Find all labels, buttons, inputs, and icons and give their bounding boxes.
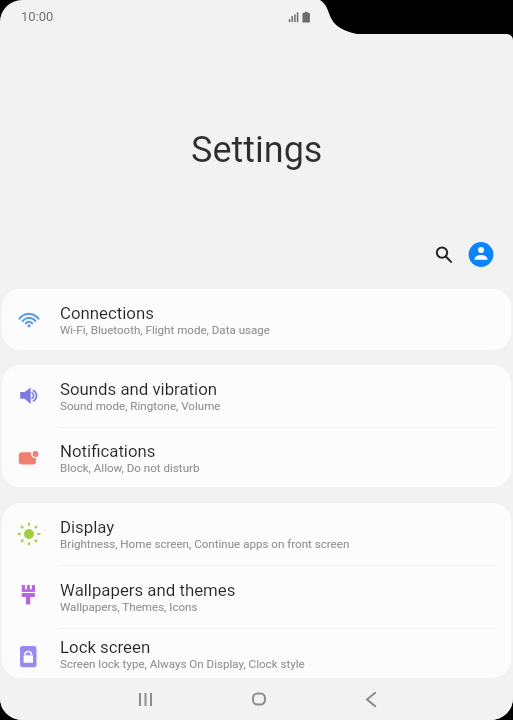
- staticText: Wi-Fi, Bluetooth, Flight mode, Data usag…: [60, 323, 270, 337]
- button[interactable]: Search: [421, 232, 465, 276]
- button[interactable]: Lock screen: [2, 629, 511, 678]
- staticText: Screen lock type, Always On Display, Clo…: [60, 657, 305, 671]
- staticText: Block, Allow, Do not disturb: [60, 461, 200, 475]
- button[interactable]: Home: [234, 678, 283, 720]
- staticText: Settings: [191, 129, 323, 171]
- staticText: 10:00: [21, 9, 54, 24]
- button[interactable]: Notifications: [2, 428, 511, 487]
- button[interactable]: Back: [346, 678, 395, 720]
- staticText: Wallpapers and themes: [60, 580, 236, 600]
- button[interactable]: Recent apps: [121, 678, 170, 720]
- button[interactable]: Sounds and vibration: [2, 365, 511, 427]
- button[interactable]: Wallpapers and themes: [2, 566, 511, 628]
- staticText: Wallpapers, Themes, Icons: [60, 600, 198, 614]
- staticText: Connections: [60, 303, 154, 323]
- staticText: Sounds and vibration: [60, 379, 218, 399]
- staticText: Brightness, Home screen, Continue apps o…: [60, 537, 350, 551]
- button[interactable]: Connections: [2, 289, 511, 350]
- staticText: Lock screen: [60, 637, 151, 657]
- staticText: Notifications: [60, 441, 156, 461]
- button[interactable]: Display: [2, 503, 511, 565]
- button[interactable]: Profile: [459, 232, 503, 276]
- staticText: Sound mode, Ringtone, Volume: [60, 399, 221, 413]
- staticText: Display: [60, 517, 115, 537]
